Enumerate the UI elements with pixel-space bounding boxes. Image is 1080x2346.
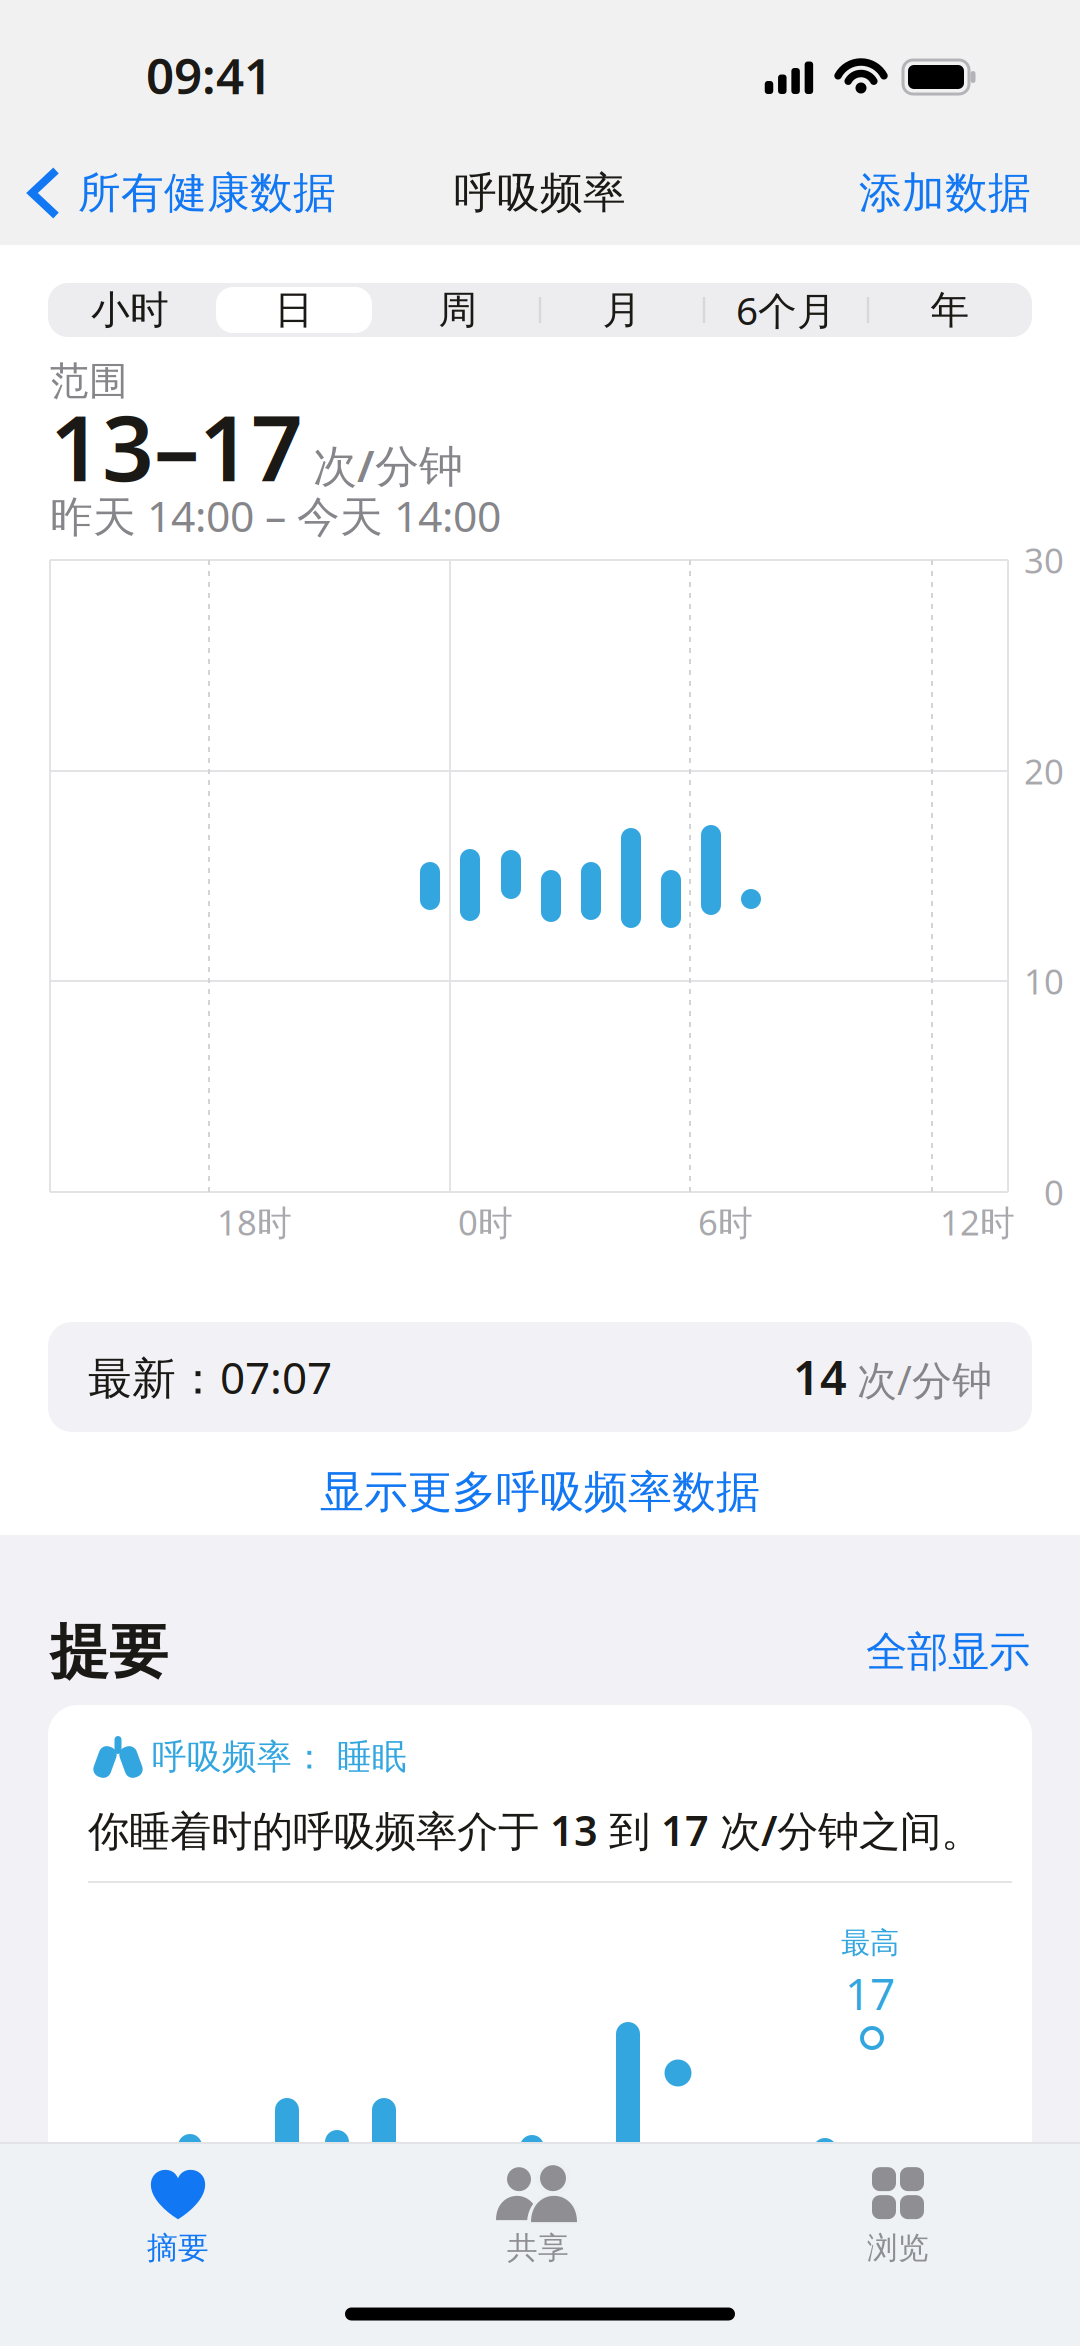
button[interactable]: 呼吸频率： 睡眠 [48,1705,1032,2345]
button[interactable]: 浏览 [867,2165,929,2267]
button[interactable]: 显示更多呼吸频率数据 [320,1465,760,1519]
staticText: 所有健康数据 [78,167,336,219]
staticText: 日 [274,286,313,334]
staticText: 添加数据 [859,167,1031,219]
button[interactable]: 月 [542,283,702,337]
staticText: 6个月 [736,284,836,336]
staticText: 你睡着时的呼吸频率介于 13 到 17 次/分钟之间。 [88,1803,982,1857]
staticText: 0 [1044,1169,1064,1215]
staticText: 昨天 14:00 – 今天 14:00 [50,487,501,544]
staticText: 13–17 [50,386,303,506]
staticText: 最高 [841,1925,899,1961]
button[interactable]: 所有健康数据 [32,167,336,219]
staticText: 30 [1024,537,1064,583]
staticText: 提要 [50,1616,168,1688]
button[interactable]: 最新：07:07 [48,1322,1032,1432]
staticText: 09:41 [146,42,272,108]
staticText: 最新：07:07 [88,1348,332,1406]
staticText: 全部显示 [866,1627,1030,1677]
button[interactable]: 全部显示 [866,1627,1030,1677]
button[interactable]: 摘要 [147,2165,209,2267]
staticText: 次/分钟 [313,436,463,494]
staticText: 12时 [940,1199,1015,1245]
button[interactable]: 日 [214,283,374,337]
button[interactable]: 小时 [50,283,210,337]
staticText: 小时 [91,286,169,334]
button[interactable]: 添加数据 [859,167,1031,219]
button[interactable]: 年 [870,283,1030,337]
staticText: 摘要 [147,2229,209,2267]
staticText: 17 [845,1964,895,2022]
staticText: 呼吸频率 [454,167,626,219]
staticText: 14 [793,1346,847,1408]
staticText: 共享 [507,2229,569,2267]
button[interactable]: 6个月 [706,283,866,337]
staticText: 18时 [217,1199,292,1245]
staticText: 呼吸频率： 睡眠 [152,1736,407,1778]
staticText: 20 [1024,748,1064,794]
staticText: 次/分钟 [857,1353,992,1406]
staticText: 年 [930,286,969,334]
button[interactable]: 共享 [493,2165,583,2267]
staticText: 周 [438,286,477,334]
button[interactable]: 周 [378,283,538,337]
staticText: 范围 [50,357,128,405]
staticText: 10 [1024,958,1064,1004]
staticText: 6时 [698,1199,753,1245]
staticText: 0时 [458,1199,513,1245]
staticText: 浏览 [867,2229,929,2267]
staticText: 月 [602,286,641,334]
staticText: 显示更多呼吸频率数据 [320,1465,760,1519]
